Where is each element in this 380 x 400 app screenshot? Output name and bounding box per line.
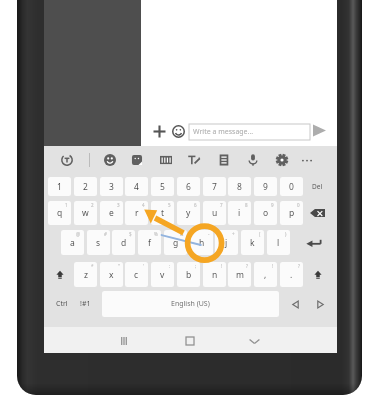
button[interactable]: 7 <box>203 177 226 196</box>
button[interactable]: r <box>125 201 148 225</box>
button[interactable]: Clipboard <box>214 150 234 170</box>
button[interactable]: s <box>87 230 110 255</box>
button[interactable]: Shift <box>48 262 71 287</box>
button[interactable]: t <box>151 201 174 225</box>
staticText: ! <box>272 263 274 269</box>
staticText: . <box>290 269 293 281</box>
staticText: r <box>135 207 139 219</box>
button[interactable]: h <box>190 230 213 255</box>
staticText: m <box>236 269 244 281</box>
button[interactable]: f <box>138 230 161 255</box>
button[interactable]: e <box>100 201 123 225</box>
button[interactable]: Recent apps <box>112 329 136 353</box>
staticText: w <box>82 207 89 219</box>
button[interactable]: Stickers <box>127 150 147 170</box>
button[interactable]: v <box>151 262 174 287</box>
staticText: d <box>121 237 127 249</box>
button[interactable]: x <box>100 262 123 287</box>
staticText: 5 <box>168 202 171 208</box>
button[interactable]: i <box>228 201 251 225</box>
button[interactable]: d <box>112 230 135 255</box>
staticText: Write a message... <box>193 127 254 137</box>
button[interactable]: n <box>203 262 226 287</box>
staticText: 9 <box>271 202 274 208</box>
staticText: q <box>57 207 63 219</box>
staticText: 5 <box>160 181 165 193</box>
staticText: $ <box>129 231 132 237</box>
staticText: 0 <box>297 202 300 208</box>
button[interactable]: Send <box>310 121 328 139</box>
staticText: @ <box>76 231 81 237</box>
staticText: # <box>104 231 107 237</box>
button[interactable]: c <box>125 262 148 287</box>
staticText: 8 <box>245 202 248 208</box>
button[interactable]: u <box>203 201 226 225</box>
button[interactable]: , <box>254 262 277 287</box>
button[interactable]: . <box>280 262 303 287</box>
button[interactable]: 6 <box>177 177 200 196</box>
button[interactable]: j <box>215 230 238 255</box>
button[interactable]: g <box>164 230 187 255</box>
staticText: k <box>250 237 255 249</box>
button[interactable]: Add <box>149 121 169 141</box>
button[interactable]: Back <box>242 329 266 353</box>
button[interactable]: Emoji <box>168 121 188 141</box>
button[interactable]: Voice input <box>243 150 263 170</box>
button[interactable]: GIF <box>156 150 176 170</box>
button[interactable]: 8 <box>228 177 251 196</box>
staticText: y <box>186 207 191 219</box>
button[interactable]: a <box>61 230 84 255</box>
button[interactable]: Shift <box>306 262 329 287</box>
staticText: 4 <box>134 181 139 193</box>
button[interactable]: English (US) <box>102 291 279 317</box>
button[interactable]: Gboard <box>57 150 77 170</box>
button[interactable]: Enter <box>297 230 332 255</box>
button[interactable]: Text editing <box>184 150 204 170</box>
button[interactable]: Delete <box>306 177 329 196</box>
button[interactable]: Write a message... <box>189 124 310 140</box>
staticText: & <box>180 231 184 237</box>
button[interactable]: o <box>254 201 277 225</box>
staticText: 3 <box>109 181 114 193</box>
button[interactable]: 3 <box>100 177 123 196</box>
staticText: ) <box>285 231 287 237</box>
button[interactable]: y <box>177 201 200 225</box>
staticText: 1 <box>57 181 62 193</box>
button[interactable]: 4 <box>125 177 148 196</box>
button[interactable]: Emoji <box>100 150 120 170</box>
button[interactable]: 1 <box>48 177 71 196</box>
button[interactable]: Symbols <box>75 291 96 317</box>
button[interactable]: l <box>267 230 290 255</box>
button[interactable]: p <box>280 201 303 225</box>
button[interactable]: k <box>241 230 264 255</box>
staticText: 1 <box>65 202 68 208</box>
button[interactable]: Home <box>178 329 202 353</box>
button[interactable]: Move cursor right <box>311 291 329 317</box>
staticText: 6 <box>186 181 191 193</box>
staticText: f <box>148 237 151 249</box>
staticText: % <box>154 231 158 237</box>
staticText: c <box>134 269 139 281</box>
staticText: + <box>232 231 235 237</box>
button[interactable]: z <box>74 262 97 287</box>
button[interactable]: Settings <box>272 150 292 170</box>
staticText: Ctrl <box>56 299 68 309</box>
staticText: e <box>109 207 114 219</box>
button[interactable]: b <box>177 262 200 287</box>
button[interactable]: w <box>74 201 97 225</box>
button[interactable]: 2 <box>74 177 97 196</box>
staticText: l <box>277 237 280 249</box>
staticText: 7 <box>220 202 223 208</box>
button[interactable]: 0 <box>280 177 303 196</box>
staticText: ? <box>298 263 300 269</box>
button[interactable]: 5 <box>151 177 174 196</box>
staticText: x <box>109 269 114 281</box>
button[interactable]: m <box>228 262 251 287</box>
staticText: !#1 <box>80 299 91 309</box>
button[interactable]: q <box>48 201 71 225</box>
button[interactable]: Move cursor left <box>286 291 304 317</box>
button[interactable]: Backspace <box>306 201 329 225</box>
button[interactable]: 9 <box>254 177 277 196</box>
button[interactable]: Control <box>50 291 73 317</box>
button[interactable]: More options <box>297 150 317 170</box>
